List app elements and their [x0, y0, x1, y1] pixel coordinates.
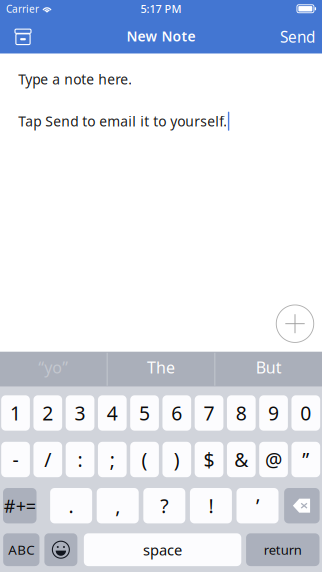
staticText: ’ [256, 492, 259, 519]
button[interactable]: Delete [284, 488, 320, 523]
button[interactable]: , [97, 488, 139, 523]
staticText: space [143, 540, 182, 560]
button[interactable]: 4 [98, 395, 127, 431]
staticText: return [264, 541, 302, 559]
staticText: $ [203, 446, 214, 473]
button[interactable]: ” [291, 442, 320, 477]
button[interactable]: ! [190, 488, 232, 523]
staticText: 0 [300, 400, 311, 426]
button[interactable]: ’ [236, 488, 278, 523]
staticText: & [234, 446, 248, 473]
button[interactable]: But [215, 352, 322, 387]
button[interactable]: 1 [1, 395, 30, 431]
button[interactable]: “yo” [0, 352, 107, 387]
staticText: ” [302, 446, 309, 473]
staticText: Tap Send to email it to yourself. [18, 112, 227, 131]
staticText: ( [141, 446, 147, 473]
button[interactable]: . [50, 488, 92, 523]
staticText: 3 [74, 400, 85, 426]
button[interactable]: 0 [291, 395, 320, 431]
staticText: . [69, 492, 74, 519]
button[interactable]: 2 [33, 395, 62, 431]
button[interactable]: ? [143, 488, 185, 523]
button[interactable]: & [227, 442, 256, 477]
staticText: 6 [171, 400, 182, 426]
staticText: Type a note here. [18, 70, 132, 89]
button[interactable]: @ [259, 442, 288, 477]
button[interactable]: 6 [162, 395, 191, 431]
button[interactable]: ( [130, 442, 159, 477]
staticText: New Note [126, 27, 195, 45]
button[interactable]: 9 [259, 395, 288, 431]
button[interactable]: space [84, 533, 241, 566]
button[interactable]: Send [280, 20, 322, 54]
button[interactable]: $ [195, 442, 223, 477]
staticText: ; [110, 446, 115, 473]
button[interactable]: ; [98, 442, 127, 477]
staticText: - [12, 446, 18, 473]
button[interactable]: The [108, 352, 214, 387]
staticText: ? [160, 492, 168, 519]
button[interactable]: 7 [195, 395, 223, 431]
staticText: 9 [268, 400, 279, 426]
staticText: #+= [4, 493, 36, 518]
button[interactable]: - [1, 442, 30, 477]
button[interactable]: 8 [227, 395, 256, 431]
staticText: ABC [8, 541, 34, 559]
button[interactable]: ) [162, 442, 191, 477]
staticText: Carrier [6, 2, 39, 16]
staticText: The [147, 356, 175, 378]
staticText: / [44, 446, 51, 473]
button[interactable]: Archive [0, 20, 46, 54]
staticText: ! [208, 492, 213, 519]
button[interactable]: 3 [66, 395, 94, 431]
staticText: 8 [236, 400, 247, 426]
staticText: , [115, 492, 120, 519]
button[interactable]: Add [272, 301, 318, 347]
staticText: 5:17 PM [140, 1, 181, 16]
staticText: 7 [203, 400, 214, 426]
button[interactable]: return [246, 533, 319, 566]
staticText: 4 [107, 400, 118, 426]
button[interactable]: : [66, 442, 94, 477]
staticText: @ [265, 446, 282, 473]
button[interactable]: 5 [130, 395, 159, 431]
button[interactable]: Emoji [44, 533, 77, 566]
staticText: : [77, 446, 82, 473]
staticText: 5 [139, 400, 150, 426]
button[interactable]: #+= [3, 488, 36, 523]
button[interactable]: / [33, 442, 62, 477]
staticText: 1 [10, 400, 21, 426]
staticText: But [256, 356, 282, 378]
staticText: 2 [42, 400, 53, 426]
button[interactable]: ABC [3, 533, 39, 566]
staticText: “yo” [38, 356, 68, 378]
staticText: Send [280, 26, 315, 47]
staticText: ) [174, 446, 180, 473]
